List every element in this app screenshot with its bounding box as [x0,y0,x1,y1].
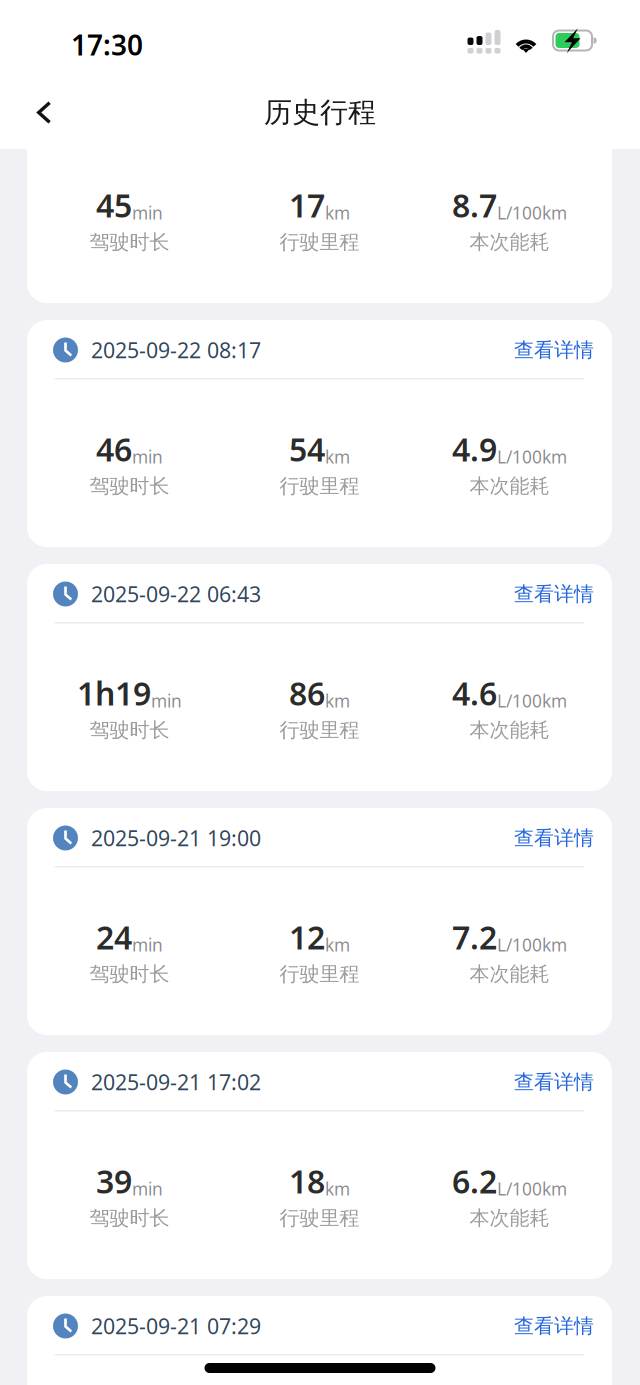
staticText: L/100km [497,689,567,712]
staticText: 8.7 [452,184,497,226]
staticText: min [132,201,163,224]
staticText: L/100km [497,933,567,956]
staticText: 本次能耗 [469,1206,549,1230]
staticText: L/100km [497,445,567,468]
staticText: 行驶里程 [279,230,359,254]
button[interactable]: 查看详情 [514,1314,594,1338]
staticText: 17 [289,184,325,226]
staticText: 行驶里程 [279,962,359,986]
staticText: km [325,201,350,224]
staticText: 本次能耗 [469,230,549,254]
staticText: 18 [289,1160,325,1202]
staticText: 24 [96,916,132,958]
staticText: km [325,1177,350,1200]
staticText: min [132,1177,163,1200]
staticText: 86 [289,672,325,714]
staticText: 驾驶时长 [89,1206,169,1230]
staticText: L/100km [497,201,567,224]
staticText: km [325,445,350,468]
staticText: 本次能耗 [469,962,549,986]
staticText: 2025-09-22 06:43 [91,580,261,608]
staticText: min [151,689,182,712]
staticText: 45 [96,184,132,226]
staticText: 查看详情 [514,1314,594,1338]
staticText: 54 [289,428,325,470]
staticText: km [325,933,350,956]
staticText: 17:30 [71,26,143,63]
staticText: km [325,689,350,712]
staticText: 2025-09-21 07:29 [91,1312,261,1340]
staticText: 4.9 [452,428,497,470]
staticText: 本次能耗 [469,474,549,498]
staticText: 驾驶时长 [89,474,169,498]
staticText: min [132,933,163,956]
staticText: 4.6 [452,672,497,714]
staticText: 39 [96,1160,132,1202]
staticText: 驾驶时长 [89,718,169,742]
button[interactable]: 查看详情 [514,1070,594,1094]
button[interactable]: 返回 [13,83,75,141]
staticText: 查看详情 [514,338,594,362]
staticText: 2025-09-21 17:02 [91,1068,261,1096]
staticText: 查看详情 [514,826,594,850]
button[interactable]: 查看详情 [514,338,594,362]
staticText: 46 [96,428,132,470]
staticText: 本次能耗 [469,718,549,742]
staticText: 12 [289,916,325,958]
staticText: 驾驶时长 [89,962,169,986]
staticText: 行驶里程 [279,474,359,498]
staticText: 2025-09-22 08:17 [91,336,261,364]
staticText: 查看详情 [514,582,594,606]
button[interactable]: 查看详情 [514,582,594,606]
staticText: 2025-09-21 19:00 [91,824,261,852]
staticText: 驾驶时长 [89,230,169,254]
staticText: min [132,445,163,468]
staticText: L/100km [497,1177,567,1200]
staticText: 6.2 [452,1160,497,1202]
staticText: 7.2 [452,916,497,958]
staticText: 1h19 [77,672,151,714]
staticText: 查看详情 [514,1070,594,1094]
button[interactable]: 查看详情 [514,826,594,850]
staticText: 历史行程 [264,95,376,130]
staticText: 行驶里程 [279,718,359,742]
staticText: 行驶里程 [279,1206,359,1230]
